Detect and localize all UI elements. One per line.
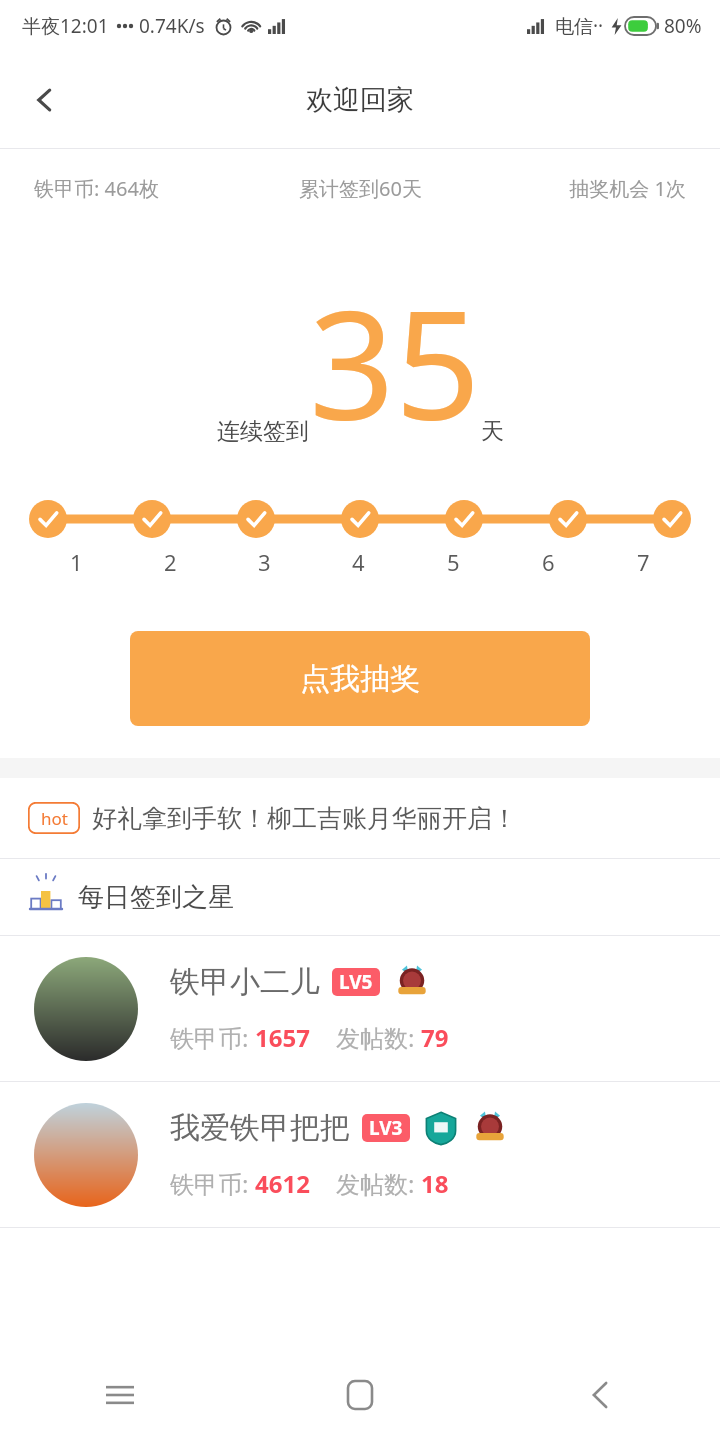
staticText: 半夜12:01 [22, 13, 109, 39]
staticText: 好礼拿到手软！柳工吉账月华丽开启！ [92, 803, 517, 834]
staticText: 累计签到60天 [252, 175, 469, 202]
button[interactable]: 我爱铁甲把把 [0, 1082, 720, 1227]
staticText: 铁甲币: 464枚 [34, 175, 252, 202]
staticText: 5 [447, 547, 460, 577]
staticText: 6 [542, 547, 555, 577]
staticText: 80% [664, 13, 702, 39]
staticText: 35 [309, 260, 481, 464]
staticText: 抽奖机会 1次 [469, 175, 686, 202]
staticText: LV3 [369, 1115, 403, 1141]
button[interactable]: 每日签到之星 [0, 859, 720, 935]
button[interactable]: hot [0, 778, 720, 858]
staticText: 0.74K/s [139, 13, 205, 39]
staticText: 1657 [255, 1021, 310, 1054]
staticText: 天 [481, 417, 504, 446]
staticText: 18 [421, 1167, 449, 1200]
staticText: 点我抽奖 [300, 660, 420, 698]
staticText: LV5 [339, 969, 373, 995]
staticText: 1 [70, 547, 83, 577]
staticText: 4612 [255, 1167, 310, 1200]
button[interactable]: Back [14, 69, 76, 131]
staticText: 铁甲小二儿 [170, 963, 320, 1001]
staticText: 发帖数: [336, 1021, 421, 1054]
button[interactable]: Back [480, 1350, 720, 1440]
staticText: 铁甲币: [170, 1021, 255, 1054]
button[interactable]: Menu [0, 1350, 240, 1440]
staticText: 铁甲币: [170, 1167, 255, 1200]
staticText: 每日签到之星 [78, 881, 234, 914]
button[interactable]: 铁甲小二儿 [0, 936, 720, 1081]
staticText: 欢迎回家 [306, 83, 414, 117]
button[interactable]: Home [240, 1350, 480, 1440]
button[interactable]: 点我抽奖 [130, 631, 590, 726]
staticText: 发帖数: [336, 1167, 421, 1200]
staticText: 4 [352, 547, 365, 577]
staticText: 2 [164, 547, 177, 577]
staticText: 我爱铁甲把把 [170, 1109, 350, 1147]
staticText: 7 [637, 547, 650, 577]
staticText: 79 [421, 1021, 449, 1054]
staticText: hot [41, 807, 68, 830]
staticText: 3 [258, 547, 271, 577]
staticText: 连续签到 [217, 417, 309, 446]
staticText: 电信·· [555, 13, 604, 39]
